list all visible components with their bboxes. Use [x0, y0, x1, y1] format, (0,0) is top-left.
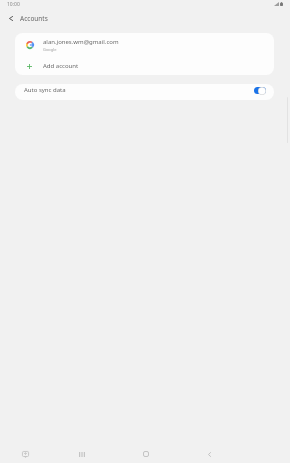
button[interactable]: Home: [133, 441, 159, 463]
button[interactable]: Navigate up: [3, 10, 19, 26]
staticText: Google: [43, 47, 57, 52]
staticText: 10:00: [7, 1, 20, 8]
staticText: Add account: [43, 62, 79, 70]
staticText: Accounts: [20, 14, 48, 23]
button[interactable]: Back: [196, 441, 222, 463]
button[interactable]: Recent apps: [69, 441, 95, 463]
staticText: Auto sync data: [24, 86, 66, 94]
button[interactable]: Add account: [15, 55, 274, 75]
button[interactable]: alan.jones.wm@gmail.com: [15, 33, 274, 55]
staticText: alan.jones.wm@gmail.com: [43, 38, 119, 46]
button[interactable]: Auto sync data: [252, 85, 268, 97]
button[interactable]: Hide keyboard: [12, 441, 38, 463]
button[interactable]: Auto sync data: [15, 84, 274, 100]
